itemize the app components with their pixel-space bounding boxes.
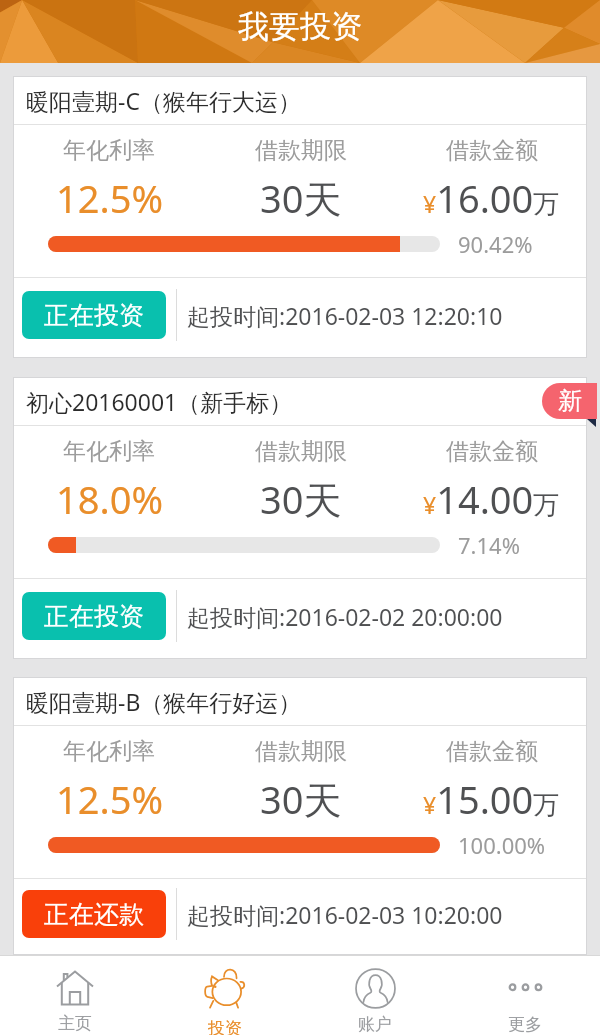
staticText: 借款期限: [255, 737, 347, 766]
button[interactable]: 暖阳壹期-B（猴年行好运）: [13, 677, 587, 955]
staticText: ¥16.00万: [423, 172, 560, 224]
staticText: 暖阳壹期-C（猴年行大运）: [26, 85, 301, 116]
staticText: 账户: [358, 1014, 392, 1035]
staticText: 投资: [208, 1018, 242, 1035]
staticText: 新: [558, 386, 582, 416]
staticText: 30天: [260, 172, 342, 224]
staticText: 借款期限: [255, 437, 347, 466]
other: Account: [355, 968, 396, 1009]
staticText: 100.00%: [458, 830, 546, 860]
staticText: 12.5%: [56, 172, 163, 224]
staticText: 初心20160001（新手标）: [26, 386, 293, 417]
staticText: 借款金额: [446, 136, 538, 165]
staticText: 90.42%: [458, 229, 533, 259]
staticText: 正在还款: [44, 899, 144, 930]
staticText: 12.5%: [56, 773, 163, 825]
button[interactable]: 正在投资: [22, 592, 166, 640]
staticText: ¥14.00万: [423, 473, 560, 525]
staticText: 借款期限: [255, 136, 347, 165]
staticText: 主页: [58, 1013, 92, 1034]
staticText: ¥15.00万: [423, 773, 560, 825]
staticText: 7.14%: [458, 530, 520, 560]
button[interactable]: 正在还款: [22, 890, 166, 938]
other: Home: [55, 968, 95, 1008]
button[interactable]: 新: [542, 383, 597, 419]
other: Invest: [202, 967, 248, 1013]
staticText: 起投时间:2016-02-02 20:00:00: [187, 601, 503, 632]
button[interactable]: 正在投资: [22, 291, 166, 339]
button[interactable]: More: [450, 956, 600, 1035]
staticText: 18.0%: [56, 473, 163, 525]
button[interactable]: 初心20160001（新手标）: [13, 377, 587, 659]
staticText: 更多: [508, 1014, 542, 1035]
button[interactable]: Invest: [150, 956, 300, 1035]
staticText: 年化利率: [63, 737, 155, 766]
staticText: 借款金额: [446, 437, 538, 466]
staticText: 起投时间:2016-02-03 12:20:10: [187, 300, 503, 331]
staticText: 借款金额: [446, 737, 538, 766]
button[interactable]: 暖阳壹期-C（猴年行大运）: [13, 76, 587, 358]
staticText: 正在投资: [44, 601, 144, 632]
staticText: 起投时间:2016-02-03 10:20:00: [187, 899, 503, 930]
staticText: 暖阳壹期-B（猴年行好运）: [26, 686, 302, 717]
staticText: 30天: [260, 473, 342, 525]
staticText: 年化利率: [63, 437, 155, 466]
button[interactable]: Home: [0, 956, 150, 1035]
staticText: 正在投资: [44, 300, 144, 331]
button[interactable]: Account: [300, 956, 450, 1035]
staticText: 30天: [260, 773, 342, 825]
staticText: 年化利率: [63, 136, 155, 165]
staticText: 我要投资: [238, 7, 362, 46]
other: More: [505, 968, 546, 1009]
